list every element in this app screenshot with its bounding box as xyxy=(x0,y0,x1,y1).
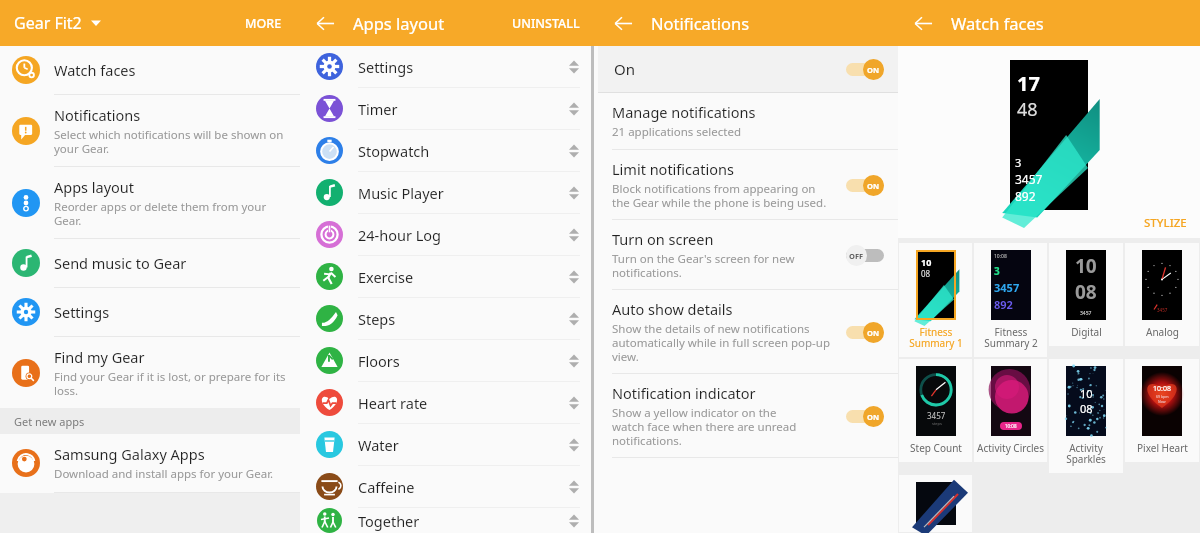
staticText: Fitness Summary 2 xyxy=(984,325,1038,350)
button[interactable]: On xyxy=(598,46,898,92)
button[interactable]: Settings xyxy=(0,288,300,336)
staticText: 10:08 xyxy=(1005,423,1017,429)
staticText: 10:08 xyxy=(994,253,1007,260)
staticText: Now xyxy=(1158,399,1166,404)
staticText: 892 xyxy=(1015,188,1036,204)
button[interactable]: On xyxy=(846,321,884,343)
button[interactable]: MORE xyxy=(241,9,286,38)
staticText: 10 xyxy=(1080,386,1093,401)
staticText: On xyxy=(614,59,635,79)
staticText: ON xyxy=(867,65,880,75)
staticText: Caffeine xyxy=(358,477,415,497)
staticText: Turn on the Gear's screen for new notifi… xyxy=(612,251,795,280)
staticText: Find my Gear xyxy=(54,347,145,367)
button[interactable]: 10 xyxy=(1049,243,1123,346)
button[interactable]: Exercise xyxy=(300,256,598,297)
button[interactable]: On xyxy=(846,58,884,80)
staticText: Floors xyxy=(358,351,400,371)
button[interactable]: Together xyxy=(300,508,598,533)
staticText: Auto show details xyxy=(612,299,733,319)
button[interactable]: Caffeine xyxy=(300,466,598,507)
staticText: 3457 xyxy=(927,410,946,421)
staticText: 24-hour Log xyxy=(358,225,441,245)
button[interactable]: Back xyxy=(310,8,340,38)
staticText: Apps layout xyxy=(353,12,445,34)
button[interactable]: Watch faces xyxy=(0,46,300,94)
staticText: Pixel Heart xyxy=(1137,441,1188,455)
staticText: Activity Sparkles xyxy=(1066,441,1106,466)
button[interactable]: Timer xyxy=(300,88,598,129)
staticText: Analog xyxy=(1146,325,1179,339)
staticText: Watch faces xyxy=(54,60,136,80)
button[interactable]: Water xyxy=(300,424,598,465)
staticText: Notifications xyxy=(54,105,141,125)
button[interactable] xyxy=(899,475,972,532)
staticText: Limit notifications xyxy=(612,159,734,179)
button[interactable]: 10:08 xyxy=(1125,359,1199,462)
staticText: 69 bpm xyxy=(1156,394,1169,399)
staticText: 48 xyxy=(1017,97,1038,122)
button[interactable]: Floors xyxy=(300,340,598,381)
staticText: 892 xyxy=(994,297,1013,312)
button[interactable]: Settings xyxy=(300,46,598,87)
staticText: Music Player xyxy=(358,183,444,203)
button[interactable]: Notification indicator xyxy=(598,374,898,457)
button[interactable]: Auto show details xyxy=(598,290,898,373)
button[interactable]: 3457 xyxy=(1125,243,1199,346)
staticText: UNINSTALL xyxy=(512,15,580,32)
button[interactable]: Find my Gear xyxy=(0,337,300,408)
staticText: Download and install apps for your Gear. xyxy=(54,466,274,482)
button[interactable]: Limit notifications xyxy=(598,150,898,219)
staticText: Notification indicator xyxy=(612,383,756,403)
button[interactable]: 10:08 xyxy=(974,359,1047,462)
staticText: Activity Circles xyxy=(977,441,1044,455)
button[interactable]: Samsung Galaxy Apps xyxy=(0,434,300,492)
button[interactable]: 24-hour Log xyxy=(300,214,598,255)
button[interactable]: Choose device xyxy=(89,16,103,30)
button[interactable]: UNINSTALL xyxy=(508,9,584,38)
staticText: Get new apps xyxy=(14,414,85,429)
staticText: Step Count xyxy=(910,441,962,455)
button[interactable]: On xyxy=(846,174,884,196)
staticText: Settings xyxy=(358,57,414,77)
staticText: 21 applications selected xyxy=(612,124,742,140)
button[interactable]: Turn on screen xyxy=(598,220,898,289)
button[interactable]: Steps xyxy=(300,298,598,339)
button[interactable]: Send music to Gear xyxy=(0,239,300,287)
button[interactable]: Stopwatch xyxy=(300,130,598,171)
staticText: 3 xyxy=(1015,155,1022,170)
staticText: Together xyxy=(358,511,420,531)
staticText: Reorder apps or delete them from your Ge… xyxy=(54,199,288,228)
staticText: Settings xyxy=(54,302,110,322)
staticText: Fitness Summary 1 xyxy=(909,325,963,350)
button[interactable]: Apps layout xyxy=(0,167,300,238)
staticText: 17 xyxy=(1017,70,1040,97)
staticText: 08 xyxy=(921,268,931,279)
button[interactable]: Heart rate xyxy=(300,382,598,423)
staticText: Select which notifications will be shown… xyxy=(54,127,284,156)
button[interactable]: 10 xyxy=(899,243,972,357)
staticText: Turn on screen xyxy=(612,229,714,249)
button[interactable]: Back xyxy=(908,8,938,38)
button[interactable]: Notifications xyxy=(0,95,300,166)
staticText: Apps layout xyxy=(54,177,135,197)
button[interactable]: 10:08 xyxy=(974,243,1047,357)
staticText: Exercise xyxy=(358,267,414,287)
staticText: 10 xyxy=(1075,253,1097,279)
staticText: 3457 xyxy=(1015,171,1043,187)
button[interactable]: 3457 xyxy=(899,359,972,462)
button[interactable]: Music Player xyxy=(300,172,598,213)
staticText: MORE xyxy=(245,15,282,32)
staticText: Manage notifications xyxy=(612,102,756,122)
button[interactable]: Manage notifications xyxy=(598,93,898,149)
staticText: Digital xyxy=(1071,325,1102,339)
button[interactable]: Back xyxy=(608,8,638,38)
button[interactable]: 10 xyxy=(1049,359,1123,473)
staticText: 3457 xyxy=(1080,310,1092,317)
staticText: ON xyxy=(867,412,880,422)
staticText: Send music to Gear xyxy=(54,253,187,273)
button[interactable]: On xyxy=(846,405,884,427)
staticText: 3 xyxy=(994,264,1000,278)
button[interactable]: Off xyxy=(846,244,884,266)
button[interactable]: STYLIZE xyxy=(1141,212,1190,234)
